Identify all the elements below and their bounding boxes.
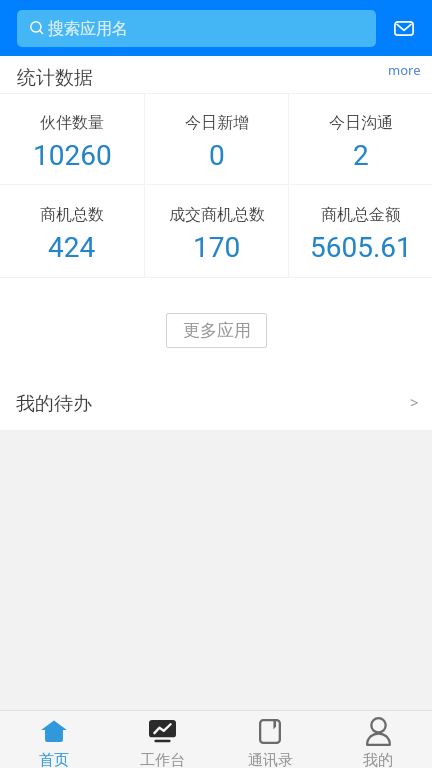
button[interactable]: 成交商机总数 [145,185,288,277]
staticText: 我的待办 [16,392,92,416]
staticText: 成交商机总数 [169,205,265,225]
staticText: more [388,61,421,79]
button[interactable]: Messages [384,8,424,48]
button[interactable]: 今日沟通 [289,94,432,184]
staticText: 5605.61 [310,231,412,264]
staticText: 更多应用 [183,320,251,341]
staticText: 今日沟通 [329,113,393,133]
staticText: 424 [48,231,96,264]
staticText: 0 [209,139,225,172]
staticText: 商机总金额 [321,205,401,225]
button[interactable]: 商机总金额 [289,185,432,277]
button[interactable]: more [372,56,432,93]
staticText: 今日新增 [185,113,249,133]
button[interactable]: 工作台 [108,711,216,768]
staticText: 商机总数 [40,205,104,225]
button[interactable]: 更多应用 [166,313,267,348]
button[interactable]: 首页 [0,711,108,768]
staticText: 10260 [33,139,112,172]
button[interactable]: 商机总数 [0,185,144,277]
staticText: 170 [193,231,241,264]
button[interactable]: 搜索应用名 [17,10,376,47]
staticText: 伙伴数量 [40,113,104,133]
button[interactable]: 通讯录 [216,711,324,768]
staticText: 统计数据 [17,66,93,90]
button[interactable]: 伙伴数量 [0,94,144,184]
staticText: 2 [353,139,369,172]
button[interactable]: 我的 [324,711,432,768]
staticText: 工作台 [140,751,185,768]
staticText: 我的 [363,751,393,768]
staticText: 通讯录 [248,751,293,768]
staticText: 搜索应用名 [48,19,128,39]
button[interactable]: 今日新增 [145,94,288,184]
button[interactable]: 我的待办 [0,378,432,430]
staticText: 首页 [39,751,69,768]
staticText: > [410,392,419,412]
